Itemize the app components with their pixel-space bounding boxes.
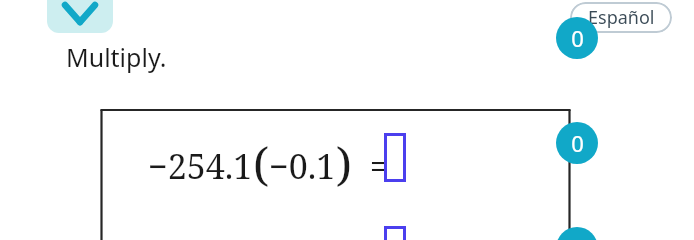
button[interactable]: Hint zero [556, 122, 598, 164]
button[interactable]: Español [570, 2, 672, 33]
staticText: 0 [571, 23, 584, 53]
staticText: Español [588, 5, 655, 30]
staticText: 0 [571, 128, 584, 158]
staticText: ( [253, 132, 269, 195]
button[interactable]: Hint zero [556, 227, 598, 240]
staticText: = [352, 143, 389, 189]
staticText: Multiply. [66, 40, 167, 74]
staticText: −0.1 [269, 143, 336, 189]
staticText: ) [336, 132, 352, 195]
button[interactable]: Collapse [47, 0, 113, 33]
button[interactable]: Answer input [384, 133, 406, 182]
button[interactable]: Hint zero [556, 17, 598, 59]
staticText: −254.1 [148, 143, 253, 189]
button[interactable]: Answer input 2 [384, 226, 406, 240]
